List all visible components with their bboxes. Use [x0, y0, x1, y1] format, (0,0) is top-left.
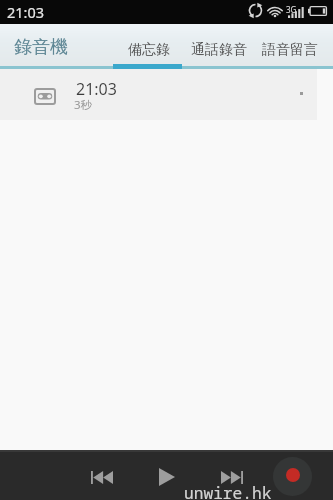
staticText: 21:03 — [76, 78, 117, 100]
button[interactable]: 21:03 — [0, 69, 317, 120]
staticText: 備忘錄 — [128, 41, 170, 59]
staticText: 21:03 — [7, 2, 45, 22]
staticText: 3秒 — [74, 97, 93, 113]
staticText: 通話錄音 — [191, 41, 247, 59]
button[interactable]: 語音留言 — [255, 27, 325, 72]
staticText: 語音留言 — [262, 41, 318, 59]
staticText: 錄音機 — [14, 36, 68, 59]
button[interactable]: Play — [144, 463, 189, 490]
button[interactable]: 通話錄音 — [184, 27, 254, 72]
button[interactable]: Rewind — [79, 465, 124, 489]
button[interactable]: Record — [273, 457, 312, 496]
button[interactable]: Fast forward — [209, 465, 254, 489]
button[interactable]: 備忘錄 — [114, 27, 184, 72]
staticText: unwire.hk — [184, 482, 272, 500]
staticText: 3G — [286, 4, 297, 15]
